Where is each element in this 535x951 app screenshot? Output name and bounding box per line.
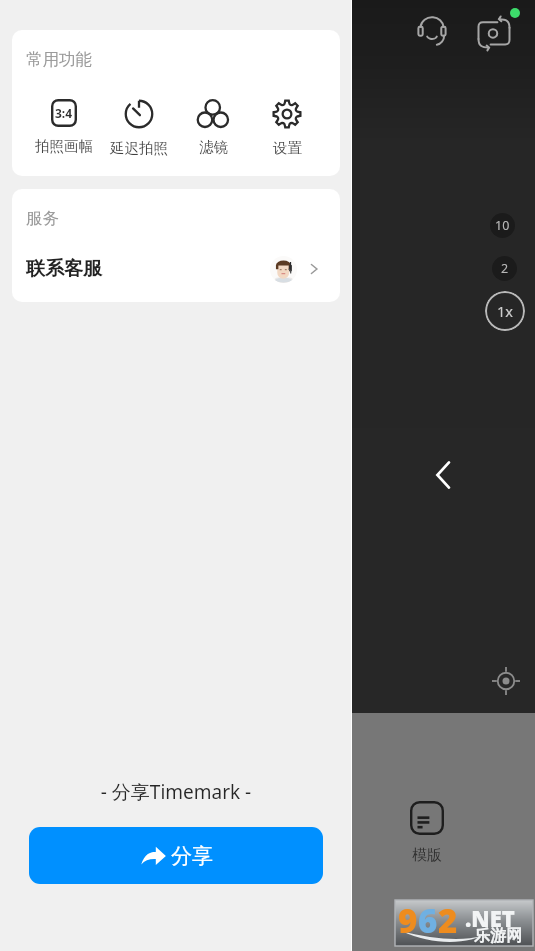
staticText: 设置 bbox=[273, 139, 302, 157]
staticText: 拍照画幅 bbox=[35, 137, 93, 155]
button[interactable]: 联系客服 bbox=[12, 240, 340, 298]
button[interactable]: 2 bbox=[492, 256, 517, 281]
staticText: 常用功能 bbox=[26, 49, 92, 70]
staticText: 乐游网 bbox=[474, 926, 522, 946]
staticText: 2 bbox=[501, 260, 509, 277]
button[interactable]: 10 bbox=[490, 213, 515, 238]
staticText: 联系客服 bbox=[26, 257, 102, 281]
staticText: 6 bbox=[418, 898, 438, 943]
button[interactable]: 设置 bbox=[250, 99, 324, 157]
staticText: 1x bbox=[497, 301, 513, 321]
staticText: 服务 bbox=[26, 208, 59, 229]
button[interactable]: Customer service bbox=[412, 10, 452, 50]
button[interactable]: 分享 bbox=[29, 827, 323, 884]
button[interactable]: Switch camera bbox=[474, 11, 514, 51]
staticText: 滤镜 bbox=[199, 138, 228, 156]
staticText: 3:4 bbox=[55, 105, 73, 121]
staticText: 模版 bbox=[412, 846, 442, 865]
staticText: - 分享Timemark - bbox=[0, 779, 352, 805]
staticText: .NET bbox=[465, 903, 515, 933]
staticText: 延迟拍照 bbox=[110, 139, 168, 157]
button[interactable]: Collapse panel bbox=[422, 454, 464, 496]
button[interactable]: 3:4 bbox=[27, 99, 101, 155]
button[interactable]: 延迟拍照 bbox=[102, 99, 176, 157]
staticText: 分享 bbox=[171, 843, 213, 869]
button[interactable]: Location bbox=[487, 662, 525, 700]
staticText: 10 bbox=[495, 217, 510, 234]
staticText: 2 bbox=[438, 898, 458, 943]
button[interactable]: 1x bbox=[485, 291, 525, 331]
button[interactable]: 模版 bbox=[404, 801, 450, 865]
staticText: 9 bbox=[398, 898, 418, 943]
button[interactable]: 滤镜 bbox=[176, 99, 250, 156]
